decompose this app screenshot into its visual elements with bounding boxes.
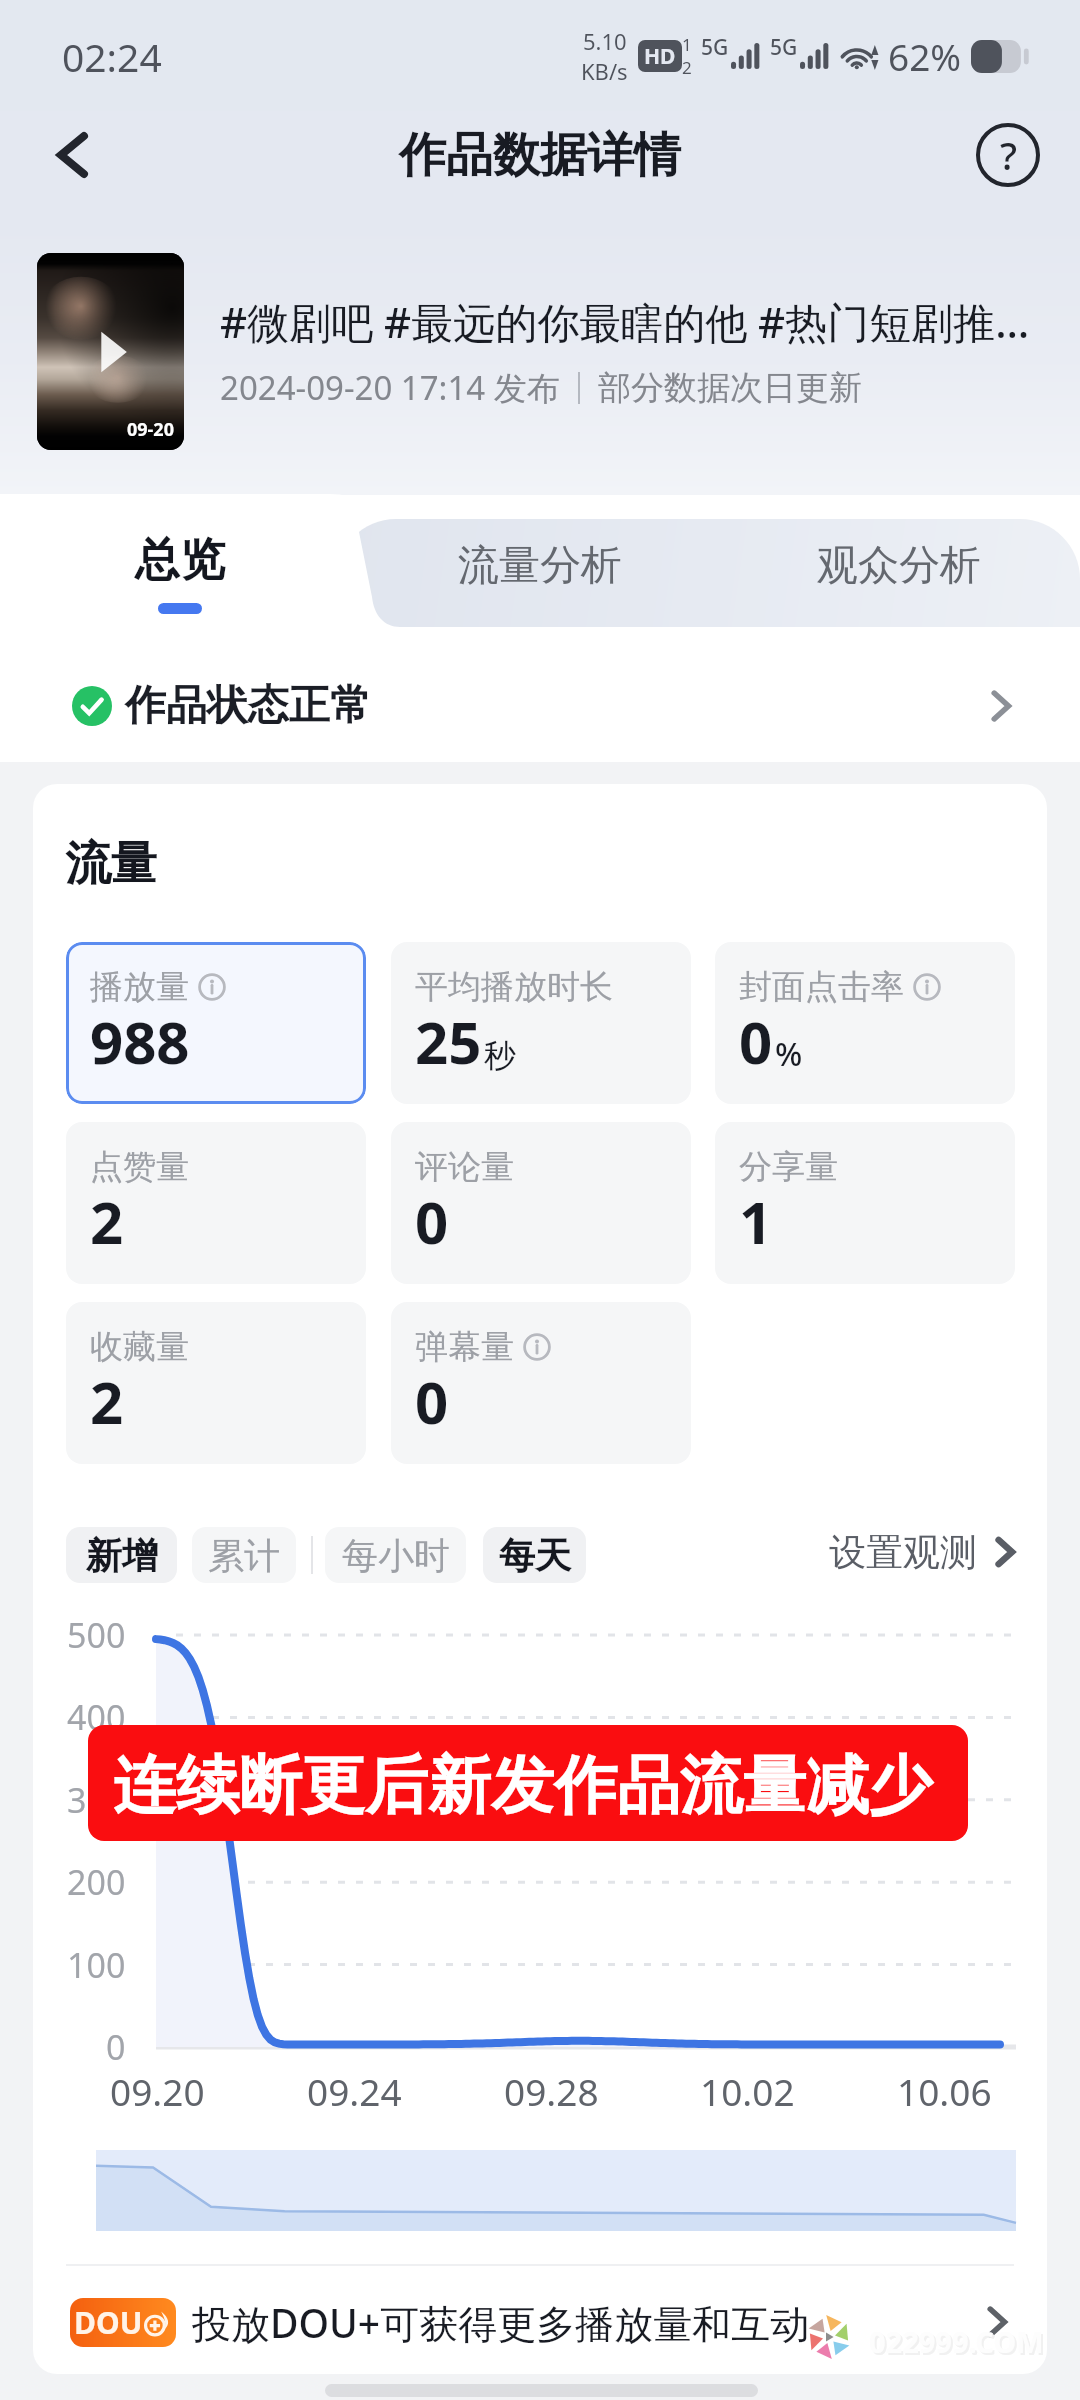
staticText: 62% bbox=[888, 31, 962, 81]
staticText: % bbox=[775, 1032, 803, 1076]
staticText: 022999.COM bbox=[869, 2322, 1044, 2361]
staticText: 播放量 bbox=[90, 966, 189, 1008]
staticText: 评论量 bbox=[415, 1146, 514, 1188]
button[interactable]: 平均播放时长 bbox=[391, 942, 691, 1104]
staticText: 10.02 bbox=[700, 2066, 795, 2116]
button[interactable]: 总览 bbox=[10, 500, 350, 650]
staticText: 0 bbox=[106, 2024, 126, 2070]
staticText: 累计 bbox=[208, 1533, 280, 1578]
staticText: 0 bbox=[415, 1182, 449, 1261]
button[interactable]: 收藏量 bbox=[66, 1302, 366, 1464]
button[interactable]: 设置观测 bbox=[829, 1519, 1021, 1585]
staticText: 5G bbox=[770, 33, 798, 62]
staticText: 1 bbox=[739, 1182, 773, 1261]
staticText: 200 bbox=[67, 1859, 126, 1905]
staticText: 作品状态正常 bbox=[125, 680, 371, 732]
staticText: 2 bbox=[90, 1362, 124, 1441]
staticText: 988 bbox=[90, 1002, 190, 1081]
button[interactable]: 分享量 bbox=[715, 1122, 1015, 1284]
staticText: 1 bbox=[682, 33, 692, 56]
staticText: 5.10 bbox=[583, 26, 627, 56]
button[interactable]: 每天 bbox=[483, 1527, 586, 1583]
staticText: 作品数据详情 bbox=[399, 126, 681, 185]
staticText: 连续断更后新发作品流量减少 bbox=[113, 1746, 932, 1825]
staticText: 秒 bbox=[484, 1036, 516, 1076]
button[interactable]: 点赞量 bbox=[66, 1122, 366, 1284]
button[interactable]: 新增 bbox=[66, 1527, 177, 1583]
staticText: 分享量 bbox=[739, 1146, 838, 1188]
button[interactable]: DOU bbox=[33, 2270, 1047, 2374]
staticText: 300 bbox=[67, 1777, 126, 1823]
staticText: 25 bbox=[415, 1002, 482, 1081]
staticText: 收藏量 bbox=[90, 1326, 189, 1368]
staticText: ? bbox=[1000, 129, 1017, 181]
staticText: 02:24 bbox=[62, 30, 162, 83]
button[interactable]: 播放量 bbox=[66, 942, 366, 1104]
staticText: 0 bbox=[415, 1362, 449, 1441]
staticText: 流量 bbox=[65, 835, 157, 893]
staticText: 0 bbox=[739, 1002, 773, 1081]
staticText: 新增 bbox=[86, 1533, 158, 1578]
button[interactable]: 作品状态正常 bbox=[0, 650, 1080, 762]
staticText: 09.28 bbox=[504, 2066, 599, 2116]
staticText: HD bbox=[644, 42, 676, 71]
button[interactable]: 每小时 bbox=[325, 1527, 466, 1583]
button[interactable]: 累计 bbox=[192, 1527, 296, 1583]
button[interactable]: 弹幕量 bbox=[391, 1302, 691, 1464]
staticText: 2 bbox=[90, 1182, 124, 1261]
button[interactable]: 评论量 bbox=[391, 1122, 691, 1284]
staticText: 每小时 bbox=[342, 1533, 450, 1578]
staticText: 400 bbox=[67, 1694, 126, 1740]
button[interactable]: 观众分析 bbox=[729, 500, 1069, 650]
staticText: KB/s bbox=[581, 56, 628, 86]
staticText: #微剧吧 #最远的你最瞎的他 #热门短剧推… bbox=[220, 293, 1030, 350]
button[interactable]: Video thumbnail bbox=[37, 253, 184, 450]
staticText: 投放DOU+可获得更多播放量和互动 bbox=[192, 2296, 810, 2349]
staticText: 部分数据次日更新 bbox=[598, 367, 862, 409]
staticText: 观众分析 bbox=[817, 540, 981, 592]
staticText: 500 bbox=[67, 1612, 126, 1658]
button[interactable]: Back bbox=[26, 107, 122, 203]
button[interactable]: 流量分析 bbox=[370, 500, 710, 650]
staticText: 封面点击率 bbox=[739, 966, 904, 1008]
staticText: 09.24 bbox=[307, 2066, 402, 2116]
staticText: 5G bbox=[701, 33, 729, 62]
staticText: 点赞量 bbox=[90, 1146, 189, 1188]
staticText: 总览 bbox=[135, 532, 225, 589]
staticText: DOU bbox=[74, 2302, 143, 2343]
button[interactable]: 封面点击率 bbox=[715, 942, 1015, 1104]
staticText: 2024-09-20 17:14 发布 bbox=[220, 365, 560, 410]
staticText: 平均播放时长 bbox=[415, 966, 613, 1008]
button[interactable]: Help bbox=[960, 107, 1056, 203]
staticText: 100 bbox=[67, 1942, 126, 1988]
staticText: 弹幕量 bbox=[415, 1326, 514, 1368]
staticText: 09-20 bbox=[127, 417, 174, 442]
staticText: 每天 bbox=[499, 1533, 571, 1578]
staticText: 10.06 bbox=[897, 2066, 992, 2116]
staticText: 设置观测 bbox=[829, 1529, 977, 1576]
staticText: 2 bbox=[682, 56, 692, 79]
staticText: 流量分析 bbox=[458, 540, 622, 592]
staticText: 022999.COM bbox=[871, 2324, 1046, 2363]
staticText: 09.20 bbox=[110, 2066, 205, 2116]
